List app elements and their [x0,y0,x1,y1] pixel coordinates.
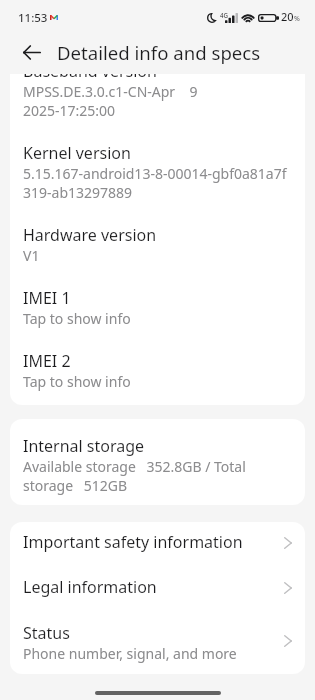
staticText: 4G [220,12,229,20]
staticText: Important safety information [23,532,243,553]
staticText: 11:53 [18,10,48,25]
staticText: Detailed info and specs [57,41,261,65]
staticText: Kernel version [23,143,131,164]
button[interactable]: Status [10,612,305,674]
button[interactable]: Important safety information [10,522,305,567]
staticText: Tap to show info [23,309,131,328]
staticText: Tap to show info [23,372,131,391]
button[interactable]: Legal information [10,567,305,612]
staticText: Baseband version [23,74,157,82]
staticText: 5.15.167-android13-8-00014-gbf0a81a7f 31… [23,164,287,202]
staticText: IMEI 2 [23,351,71,372]
button[interactable]: Back [14,38,50,66]
staticText: 20 [281,10,294,24]
staticText: Available storage 352.8GB / Total storag… [23,457,246,495]
staticText: Status [23,623,70,644]
staticText: V1 [23,246,40,265]
staticText: % [294,14,300,23]
staticText: Legal information [23,577,157,598]
staticText: MPSS.DE.3.0.c1-CN-Apr 9 2025-17:25:00 [23,82,198,120]
staticText: Phone number, signal, and more [23,644,237,663]
staticText: Hardware version [23,225,157,246]
staticText: Internal storage [23,436,145,457]
staticText: IMEI 1 [23,288,71,309]
